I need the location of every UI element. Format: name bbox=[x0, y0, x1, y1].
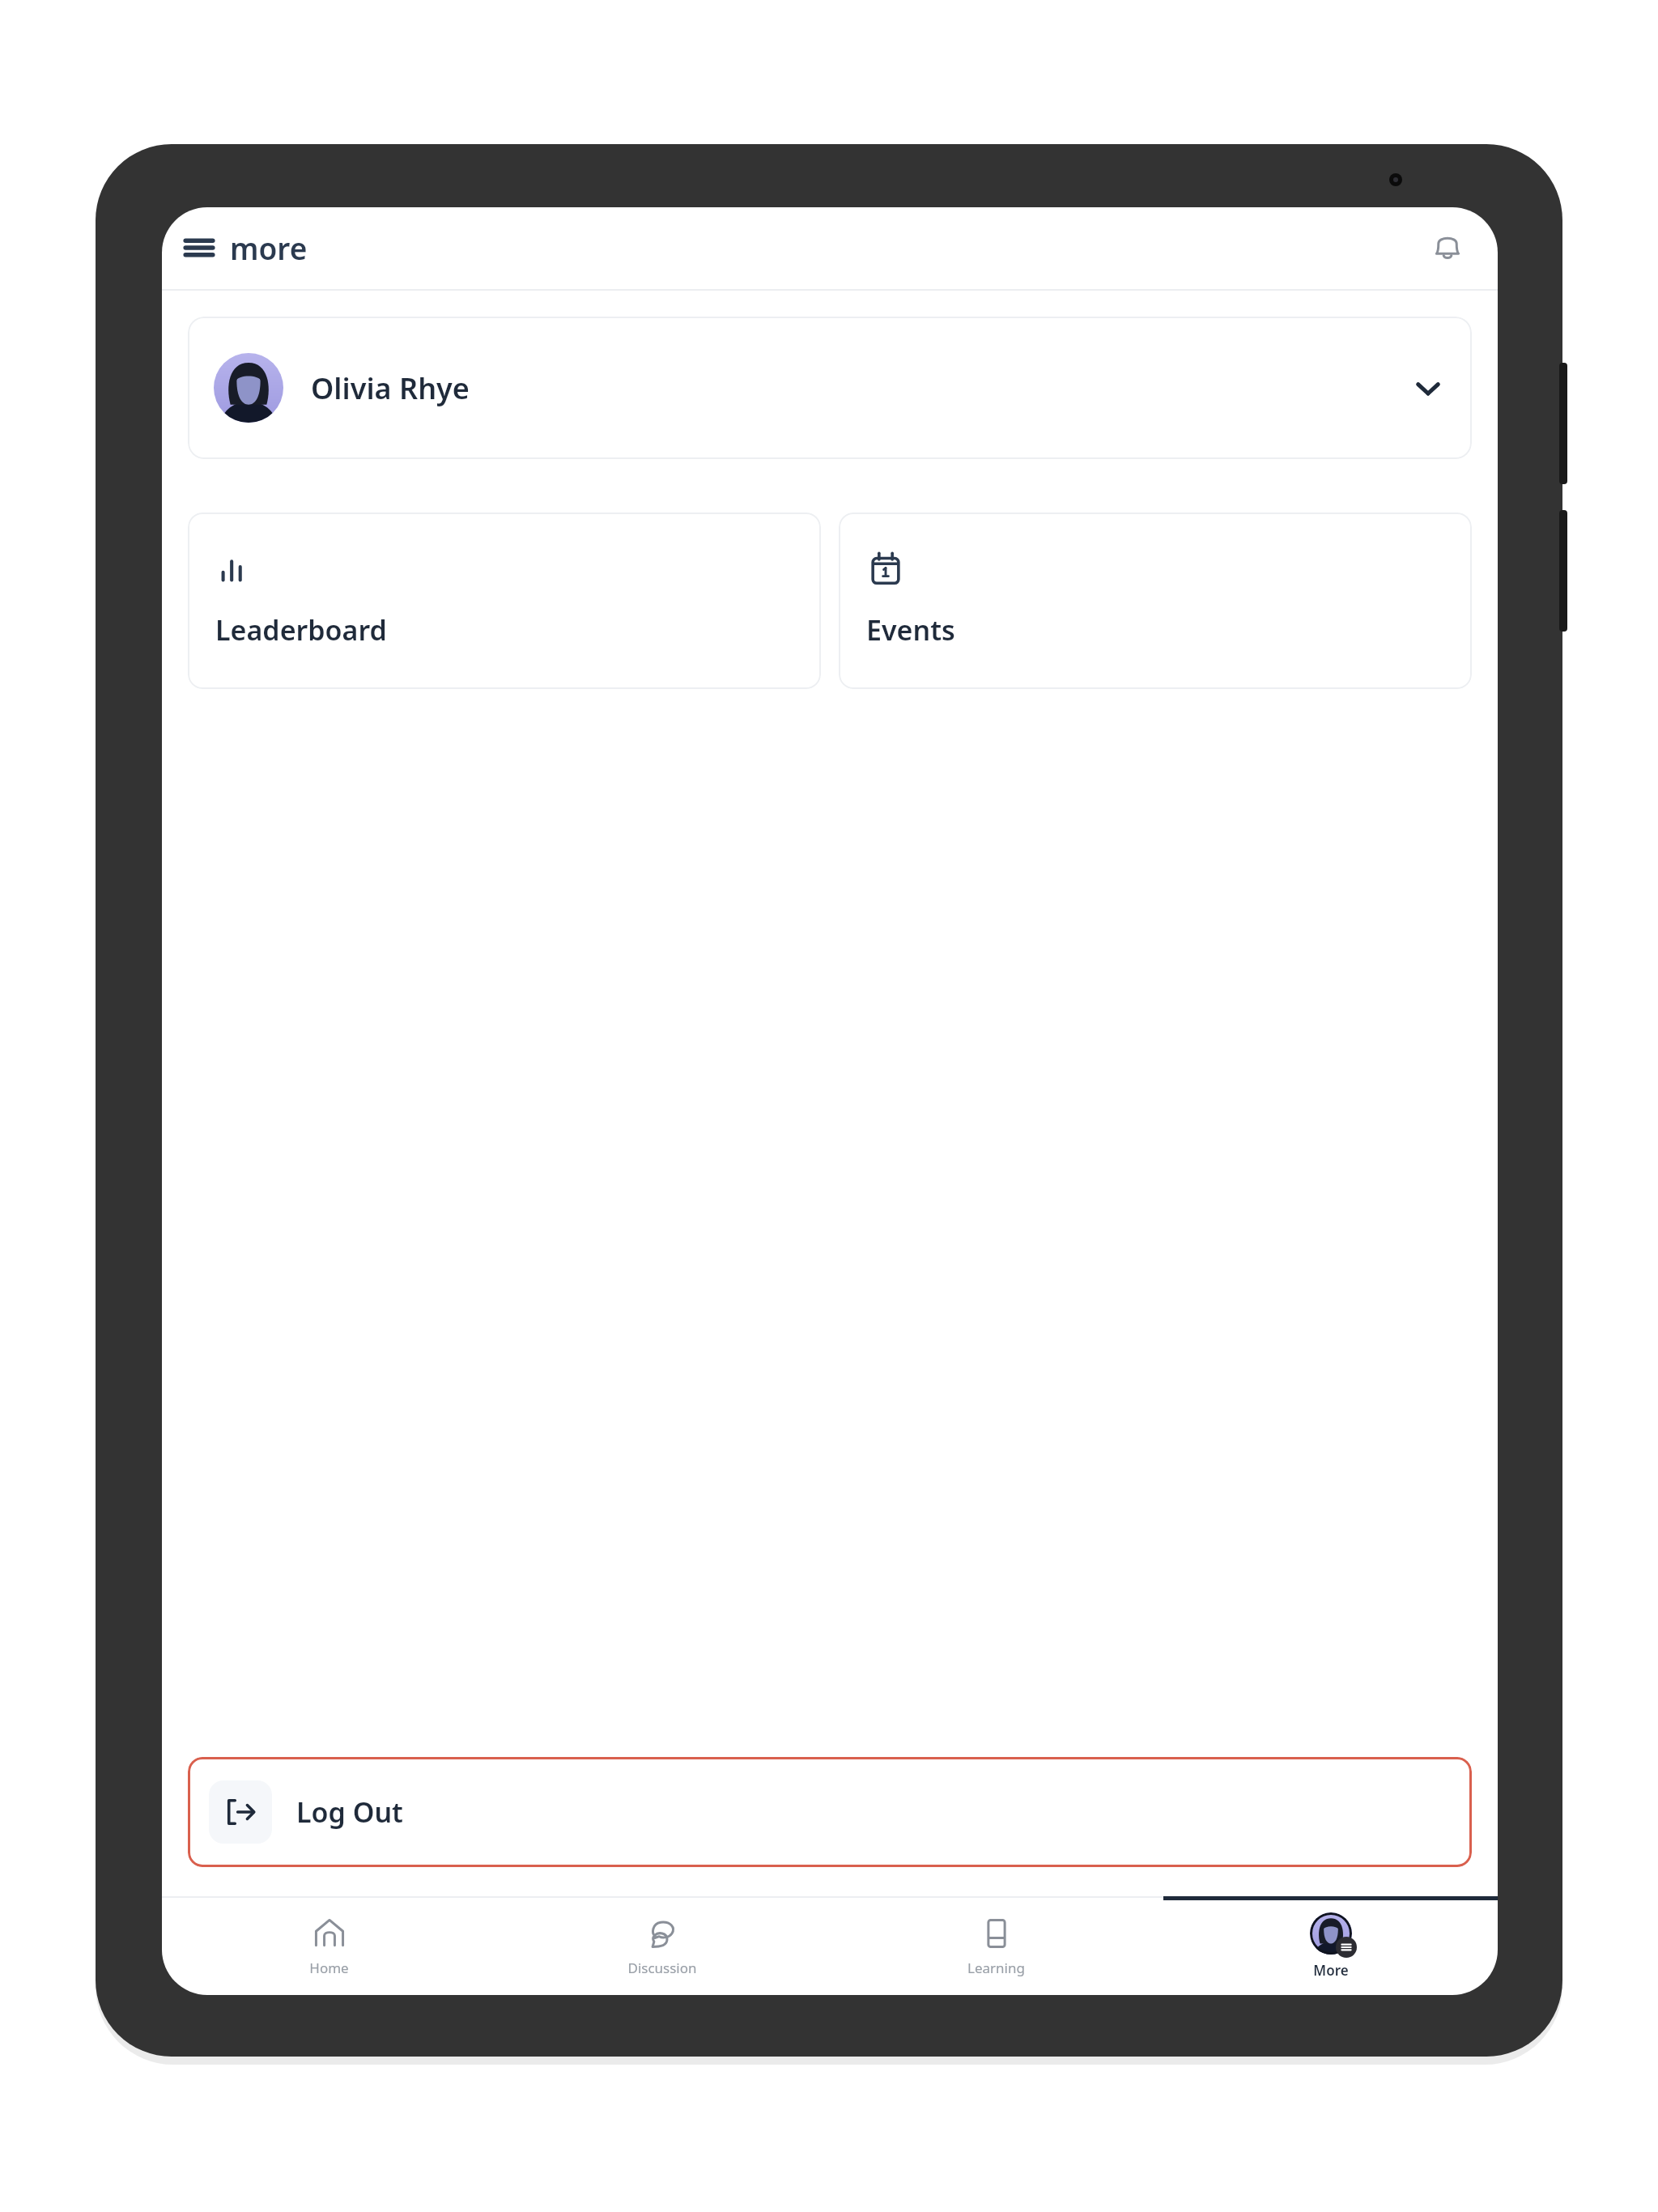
button[interactable]: Discussion bbox=[495, 1896, 829, 1995]
button[interactable]: More bbox=[1163, 1896, 1498, 1995]
button[interactable]: more bbox=[175, 221, 316, 274]
staticText: Log Out bbox=[296, 1793, 403, 1831]
button[interactable]: Leaderboard bbox=[188, 513, 821, 689]
button[interactable]: Learning bbox=[829, 1896, 1163, 1995]
staticText: Events bbox=[866, 611, 955, 649]
button[interactable]: Notifications bbox=[1418, 219, 1477, 277]
staticText: Home bbox=[309, 1959, 349, 1977]
staticText: Learning bbox=[967, 1959, 1025, 1977]
staticText: Leaderboard bbox=[215, 611, 387, 649]
staticText: Olivia Rhye bbox=[311, 368, 470, 408]
button[interactable]: Olivia Rhye bbox=[188, 317, 1472, 459]
button[interactable]: Events bbox=[839, 513, 1472, 689]
staticText: Discussion bbox=[627, 1959, 697, 1977]
staticText: More bbox=[1313, 1961, 1349, 1980]
button[interactable]: Home bbox=[162, 1896, 495, 1995]
button[interactable]: Log Out bbox=[188, 1757, 1472, 1867]
staticText: more bbox=[230, 228, 308, 268]
